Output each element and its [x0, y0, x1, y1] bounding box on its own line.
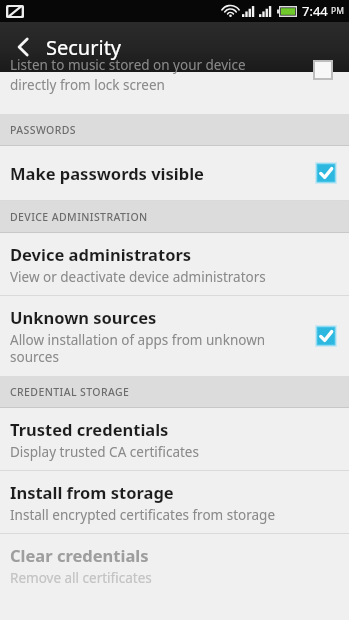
- button[interactable]: Unknown sources: [0, 296, 349, 376]
- button[interactable]: Clear credentials: [0, 534, 349, 596]
- staticText: Listen to music stored on your device: [10, 56, 246, 74]
- button[interactable]: Make passwords visible: [0, 146, 349, 200]
- staticText: PASSWORDS: [10, 123, 77, 137]
- staticText: Remove all certificates: [10, 569, 152, 587]
- staticText: Security: [46, 34, 122, 61]
- button[interactable]: Back: [0, 22, 46, 72]
- staticText: Trusted credentials: [10, 418, 169, 440]
- staticText: Device administrators: [10, 243, 192, 265]
- staticText: Install from storage: [10, 481, 174, 503]
- staticText: Allow installation of apps from unknown …: [10, 331, 266, 366]
- staticText: directly from lock screen: [10, 76, 165, 94]
- staticText: View or deactivate device administrators: [10, 268, 266, 286]
- staticText: Make passwords visible: [10, 162, 204, 184]
- staticText: Clear credentials: [10, 544, 149, 566]
- button[interactable]: Device administrators: [0, 233, 349, 295]
- staticText: Unknown sources: [10, 306, 157, 328]
- button[interactable]: Trusted credentials: [0, 408, 349, 470]
- staticText: PM: [331, 5, 344, 17]
- staticText: Display trusted CA certificates: [10, 443, 199, 461]
- staticText: CREDENTIAL STORAGE: [10, 385, 130, 399]
- staticText: 7:44: [302, 2, 328, 20]
- button[interactable]: Listen to music stored on your device: [0, 72, 349, 114]
- staticText: DEVICE ADMINISTRATION: [10, 210, 148, 224]
- button[interactable]: Install from storage: [0, 471, 349, 533]
- staticText: Install encrypted certificates from stor…: [10, 506, 276, 524]
